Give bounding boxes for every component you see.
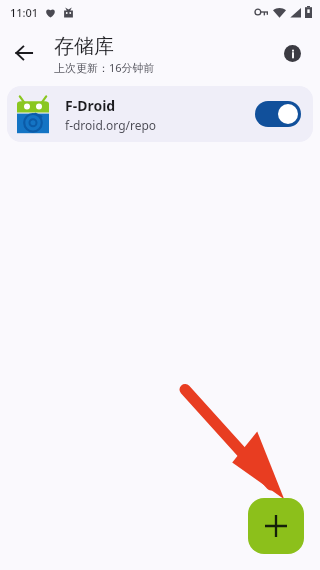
staticText: 11:01: [10, 5, 39, 20]
button[interactable]: Add repository: [248, 498, 304, 554]
button[interactable]: Info: [272, 33, 312, 73]
staticText: 上次更新：16分钟前: [54, 60, 155, 75]
button[interactable]: Back: [4, 33, 44, 73]
staticText: F-Droid: [65, 96, 116, 115]
button[interactable]: Enable repository: [255, 101, 301, 127]
staticText: 存储库: [54, 34, 114, 59]
staticText: f-droid.org/repo: [65, 117, 157, 133]
button[interactable]: F-Droid: [7, 86, 313, 142]
